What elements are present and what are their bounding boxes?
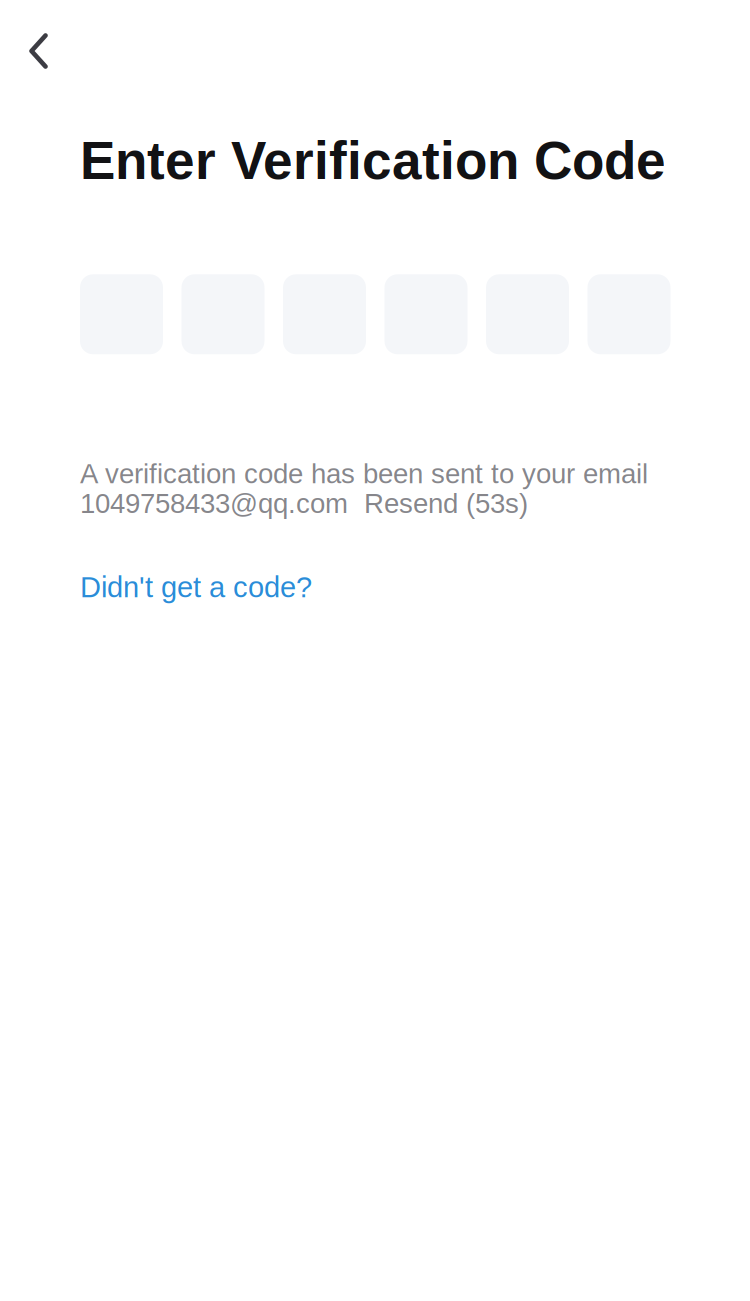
staticText: 1049758433@qq.com Resend (53s)	[80, 488, 528, 519]
staticText: A verification code has been sent to you…	[80, 458, 648, 489]
button[interactable]: Didn't get a code?	[0, 563, 336, 611]
button[interactable]: Back	[0, 0, 74, 89]
staticText: Didn't get a code?	[80, 571, 312, 603]
staticText: Enter Verification Code	[80, 131, 666, 190]
